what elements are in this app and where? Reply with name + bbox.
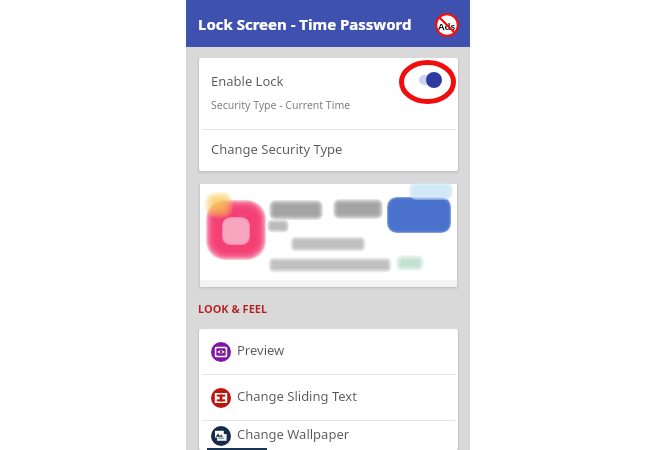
staticText: Change Sliding Text (237, 387, 357, 405)
staticText: Lock Screen - Time Password (198, 14, 412, 34)
button[interactable]: Change Sliding Text (199, 375, 458, 420)
button[interactable]: Change Wallpaper (199, 421, 458, 450)
button[interactable]: Enable Lock toggle (414, 66, 454, 94)
button[interactable]: Remove ads (434, 12, 460, 38)
staticText: Enable Lock (211, 72, 284, 90)
staticText: Ads (438, 20, 456, 33)
button[interactable]: Advertisement (200, 184, 457, 287)
staticText: Change Wallpaper (237, 425, 350, 443)
button[interactable]: Preview (199, 329, 458, 374)
staticText: LOOK & FEEL (198, 301, 268, 316)
button[interactable]: Enable Lock (199, 58, 458, 129)
staticText: Security Type - Current Time (211, 98, 351, 112)
staticText: Change Security Type (211, 140, 343, 158)
button[interactable]: Change Security Type (199, 130, 458, 171)
staticText: Preview (237, 341, 285, 359)
